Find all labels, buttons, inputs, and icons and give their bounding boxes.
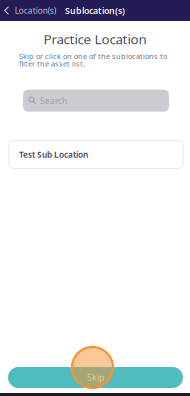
staticText: Skip <box>87 372 104 383</box>
staticText: Sublocation(s) <box>65 4 125 16</box>
button[interactable]: Test Sub Location <box>0 141 190 169</box>
button[interactable]: Location(s) <box>0 1 56 20</box>
staticText: filter the asset list. <box>19 59 85 69</box>
staticText: Practice Location <box>43 30 146 48</box>
button[interactable]: Search <box>0 90 190 112</box>
staticText: Test Sub Location <box>19 149 88 160</box>
button[interactable]: Skip <box>0 367 190 388</box>
staticText: Location(s) <box>15 5 56 16</box>
staticText: Skip or click on one of the sublocations… <box>19 51 167 61</box>
staticText: Search <box>40 95 67 106</box>
